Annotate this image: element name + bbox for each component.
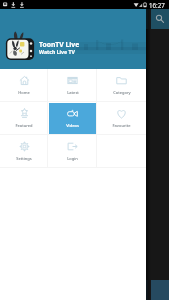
- button[interactable]: Videos: [49, 103, 96, 134]
- staticText: Category: [113, 90, 131, 95]
- button[interactable]: Home: [1, 70, 47, 101]
- staticText: Featured: [15, 123, 33, 128]
- button[interactable]: Favourite: [98, 103, 145, 134]
- button[interactable]: Settings: [1, 136, 47, 167]
- button[interactable]: Search: [147, 9, 169, 29]
- button[interactable]: Featured: [1, 103, 47, 134]
- staticText: ToonTV Live: [39, 40, 80, 49]
- staticText: Favourite: [112, 123, 131, 128]
- staticText: Settings: [16, 156, 32, 161]
- button[interactable]: Latest: [49, 70, 96, 101]
- staticText: Watch Live TV: [39, 48, 75, 55]
- staticText: Home: [18, 90, 30, 95]
- staticText: Latest: [67, 90, 79, 95]
- button[interactable]: Login: [49, 136, 96, 167]
- staticText: 16:27: [149, 1, 165, 9]
- staticText: Videos: [66, 123, 79, 128]
- button[interactable]: Category: [98, 70, 145, 101]
- staticText: Login: [67, 156, 78, 161]
